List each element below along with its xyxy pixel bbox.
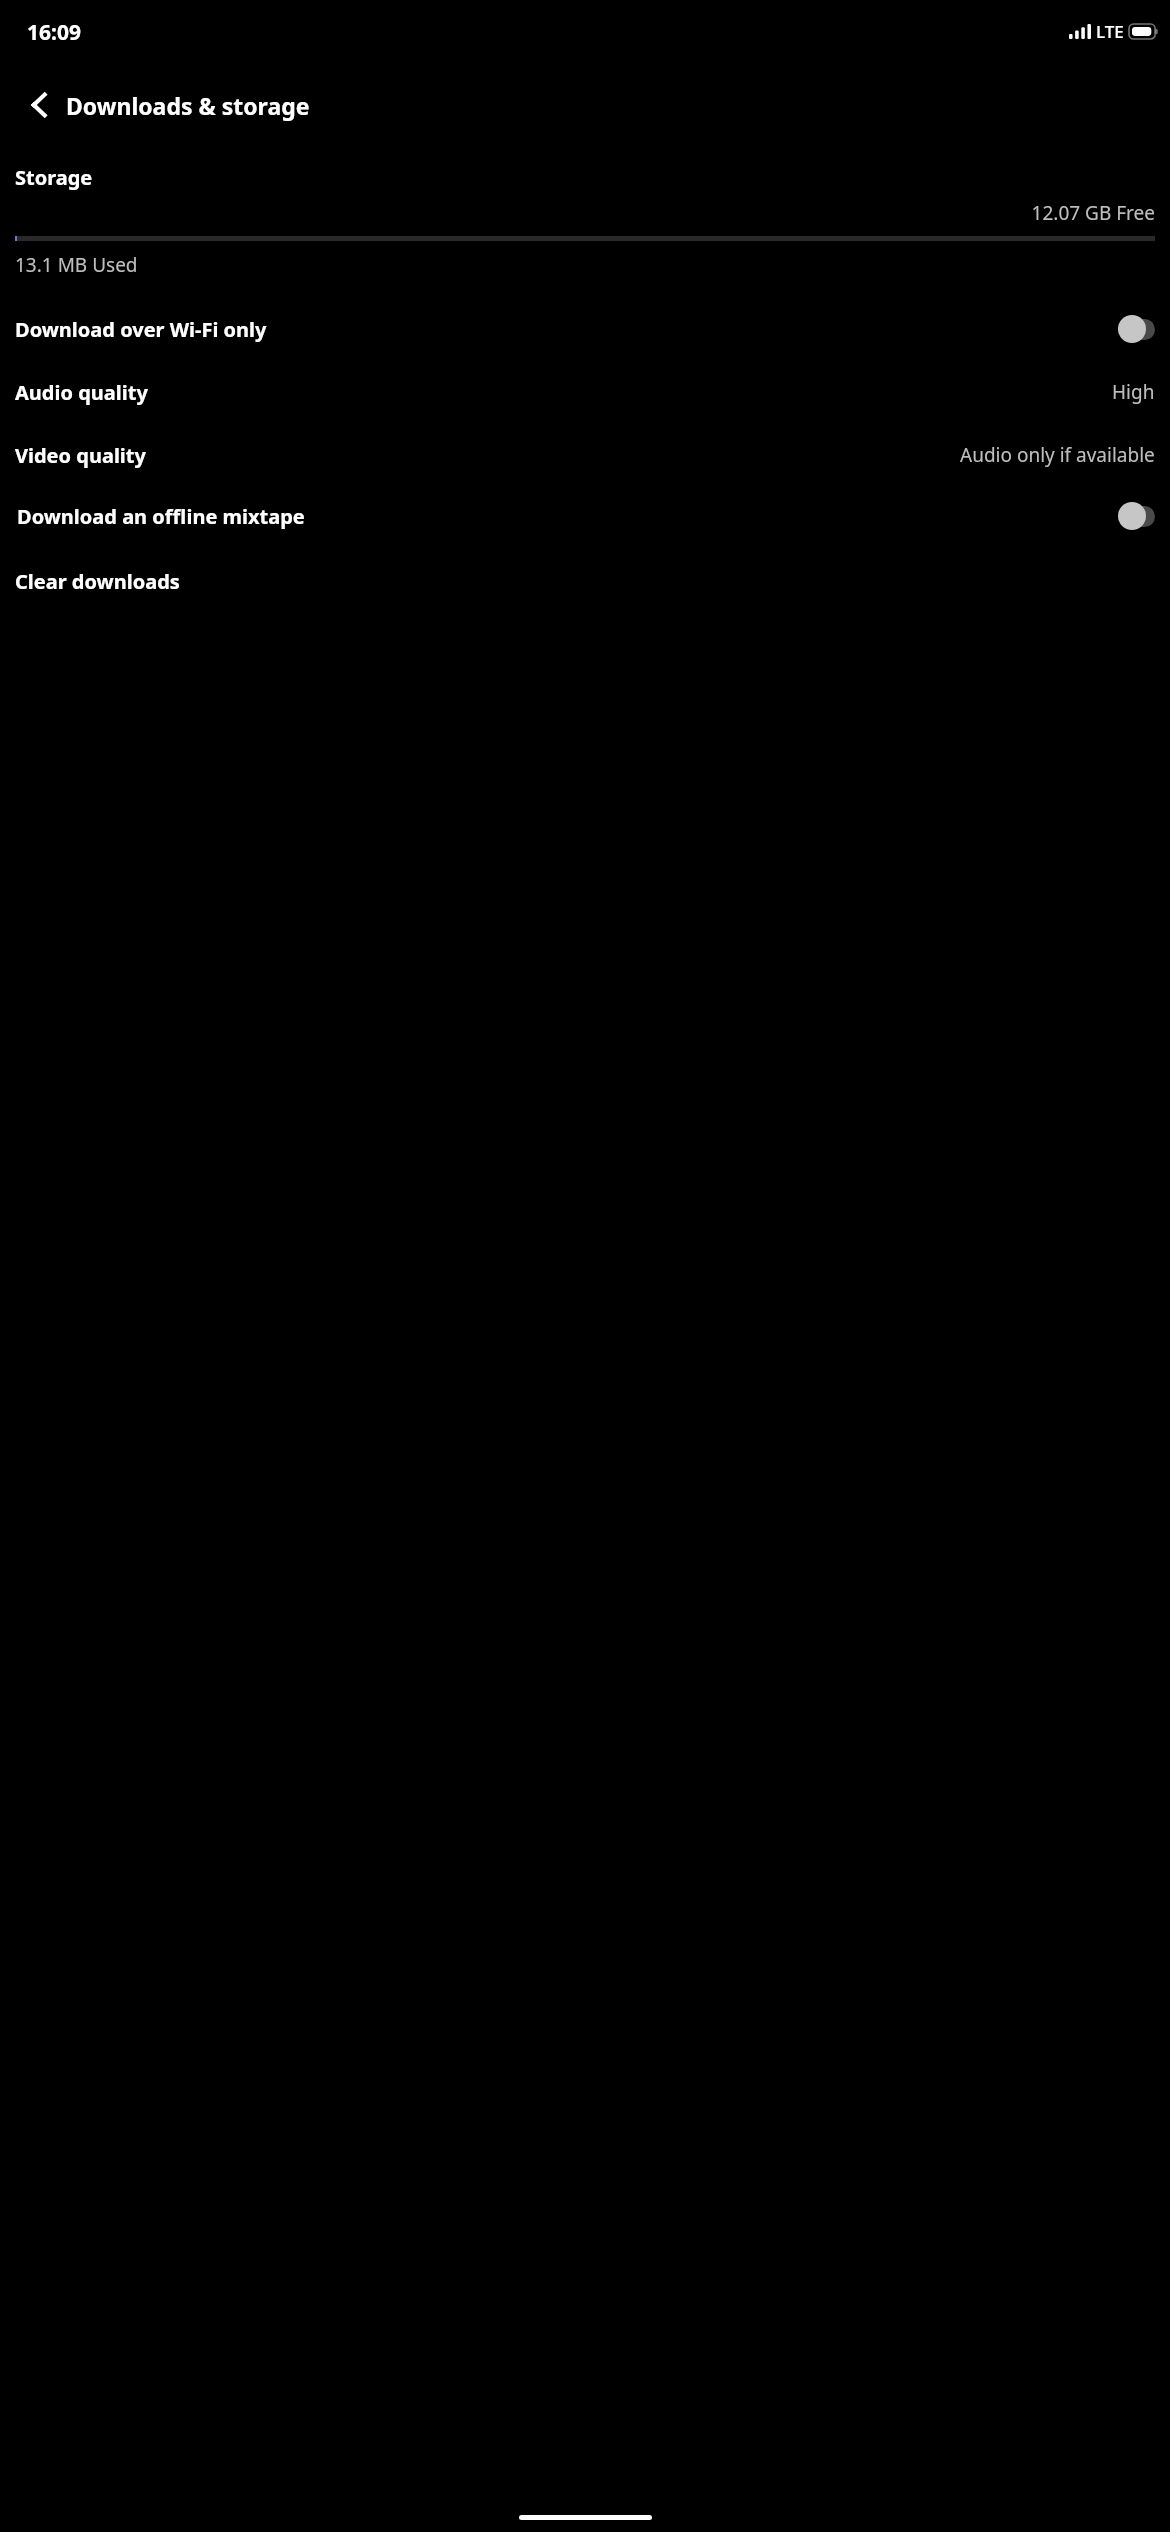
staticText: Audio only if available [960,442,1155,468]
staticText: Clear downloads [15,568,180,595]
button[interactable]: Download over Wi-Fi only [0,309,1170,349]
staticText: Downloads & storage [66,90,310,121]
staticText: Video quality [15,442,146,469]
button[interactable]: Download an offline mixtape [0,496,1170,536]
staticText: Storage [15,164,93,191]
staticText: Download an offline mixtape [17,503,305,530]
staticText: Audio quality [15,379,148,406]
staticText: 12.07 GB Free [0,200,1155,226]
button[interactable]: Clear downloads [0,564,1170,598]
button[interactable]: Audio quality [0,375,1170,409]
staticText: LTE [1096,20,1124,43]
staticText: High [1112,379,1155,405]
button[interactable]: Video quality [0,438,1170,472]
staticText: 16:09 [27,18,81,47]
button[interactable]: Back [14,79,66,131]
staticText: Download over Wi-Fi only [15,316,267,343]
staticText: 13.1 MB Used [15,252,138,278]
